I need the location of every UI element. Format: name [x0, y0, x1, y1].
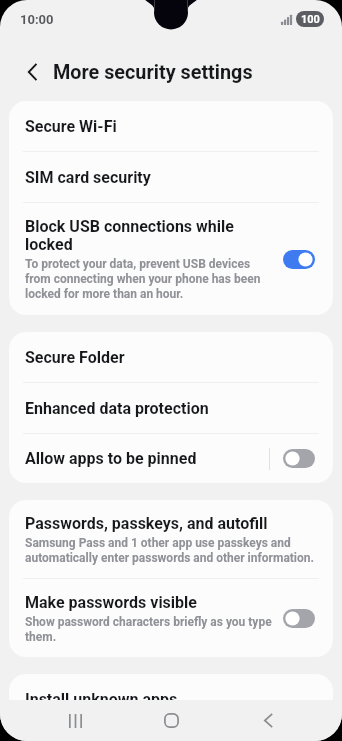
staticText: Make passwords visible [25, 593, 197, 612]
staticText: More security settings [53, 61, 253, 84]
button[interactable]: Make passwords visible [9, 579, 333, 657]
button[interactable]: Back [246, 700, 290, 741]
button[interactable]: Recent apps [53, 700, 97, 741]
staticText: Enhanced data protection [25, 399, 209, 418]
staticText: Block USB connections while locked [25, 217, 275, 254]
button[interactable]: Secure Folder [9, 332, 333, 382]
staticText: To protect your data, prevent USB device… [25, 257, 275, 300]
button[interactable]: Allow apps to be pinned [9, 434, 333, 483]
button[interactable]: Passwords, passkeys, and autofill [9, 500, 333, 578]
staticText: Allow apps to be pinned [25, 449, 197, 468]
staticText: Secure Wi-Fi [25, 117, 117, 136]
staticText: Secure Folder [25, 348, 125, 367]
staticText: Show password characters briefly as you … [25, 615, 275, 643]
staticText: SIM card security [25, 168, 151, 187]
button[interactable]: SIM card security [9, 152, 333, 202]
button[interactable]: Navigate up [17, 57, 47, 87]
button[interactable]: Block USB connections while locked [9, 203, 333, 315]
button[interactable]: Install unknown apps [9, 674, 333, 724]
button[interactable]: Enhanced data protection [9, 383, 333, 433]
staticText: 10:00 [20, 12, 54, 27]
button[interactable]: Home [149, 700, 193, 741]
staticText: Samsung Pass and 1 other app use passkey… [25, 536, 319, 564]
staticText: Install unknown apps [25, 690, 178, 709]
staticText: 100 [301, 13, 320, 26]
button[interactable]: Secure Wi-Fi [9, 101, 333, 151]
staticText: Passwords, passkeys, and autofill [25, 514, 268, 533]
